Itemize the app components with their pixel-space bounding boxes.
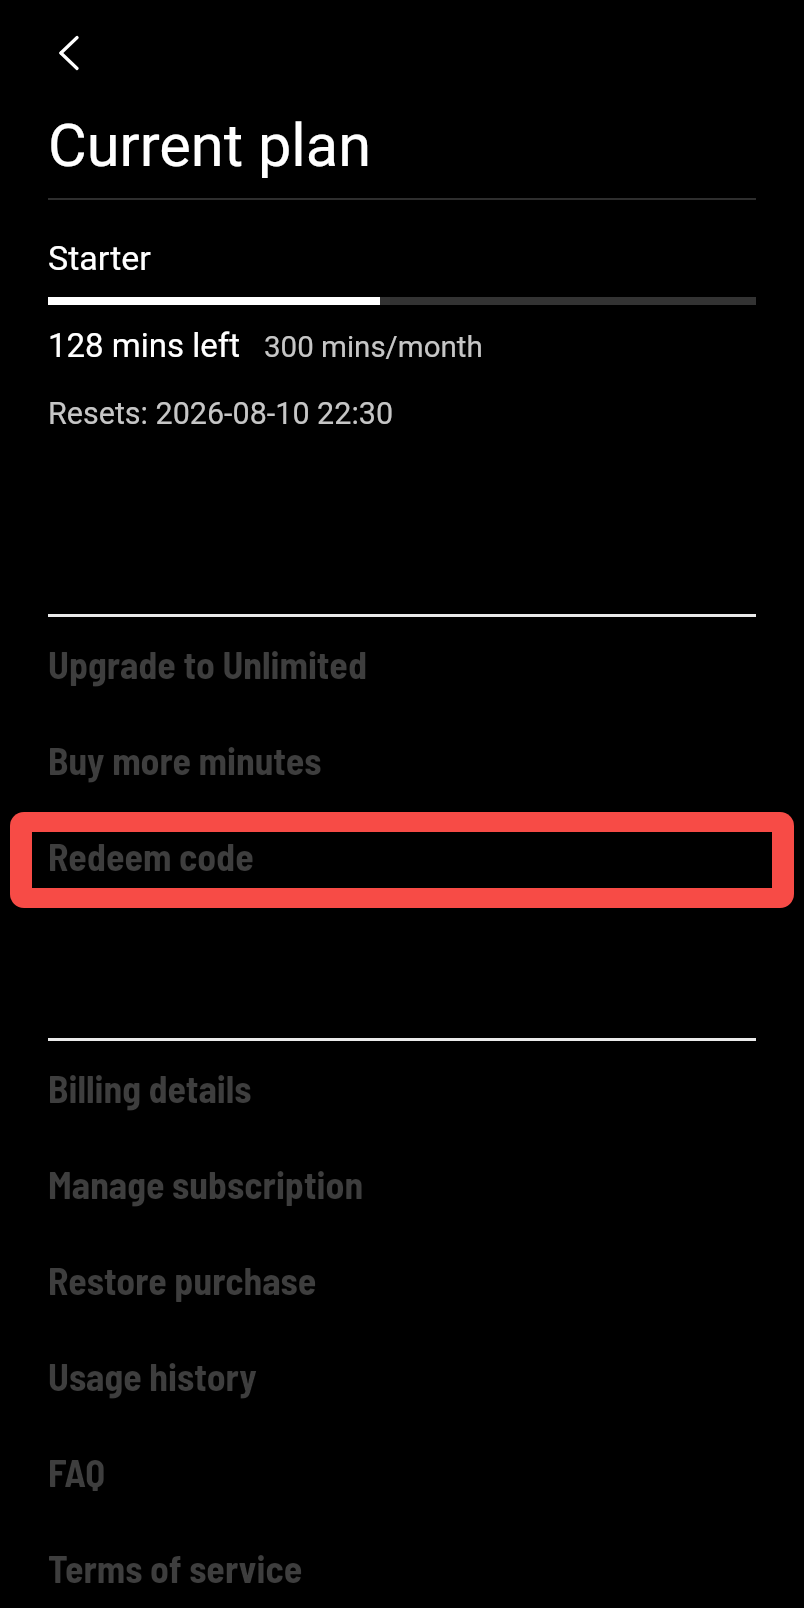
staticText: Billing details xyxy=(48,1065,252,1110)
staticText: Buy more minutes xyxy=(48,737,322,782)
button[interactable]: Billing details xyxy=(0,1044,804,1140)
button[interactable]: Upgrade to Unlimited xyxy=(0,620,804,716)
staticText: Current plan xyxy=(48,111,372,181)
button[interactable]: Manage subscription xyxy=(0,1140,804,1236)
button[interactable]: Usage history xyxy=(0,1332,804,1428)
button[interactable]: Terms of service xyxy=(0,1524,804,1608)
staticText: 300 mins/month xyxy=(264,330,483,365)
staticText: Resets: 2026-08-10 22:30 xyxy=(48,396,394,432)
staticText: Upgrade to Unlimited xyxy=(48,641,367,686)
staticText: Redeem code xyxy=(48,833,254,878)
staticText: Terms of service xyxy=(48,1545,303,1590)
staticText: Restore purchase xyxy=(48,1257,317,1302)
staticText: Manage subscription xyxy=(48,1161,364,1206)
button[interactable]: Navigate back xyxy=(21,5,117,101)
button[interactable]: Restore purchase xyxy=(0,1236,804,1332)
staticText: Usage history xyxy=(48,1353,257,1398)
staticText: 128 mins left xyxy=(48,326,241,365)
button[interactable]: Buy more minutes xyxy=(0,716,804,812)
staticText: FAQ xyxy=(48,1449,106,1494)
staticText: Starter xyxy=(48,238,151,278)
button[interactable]: Redeem code xyxy=(0,812,804,908)
button[interactable]: FAQ xyxy=(0,1428,804,1524)
